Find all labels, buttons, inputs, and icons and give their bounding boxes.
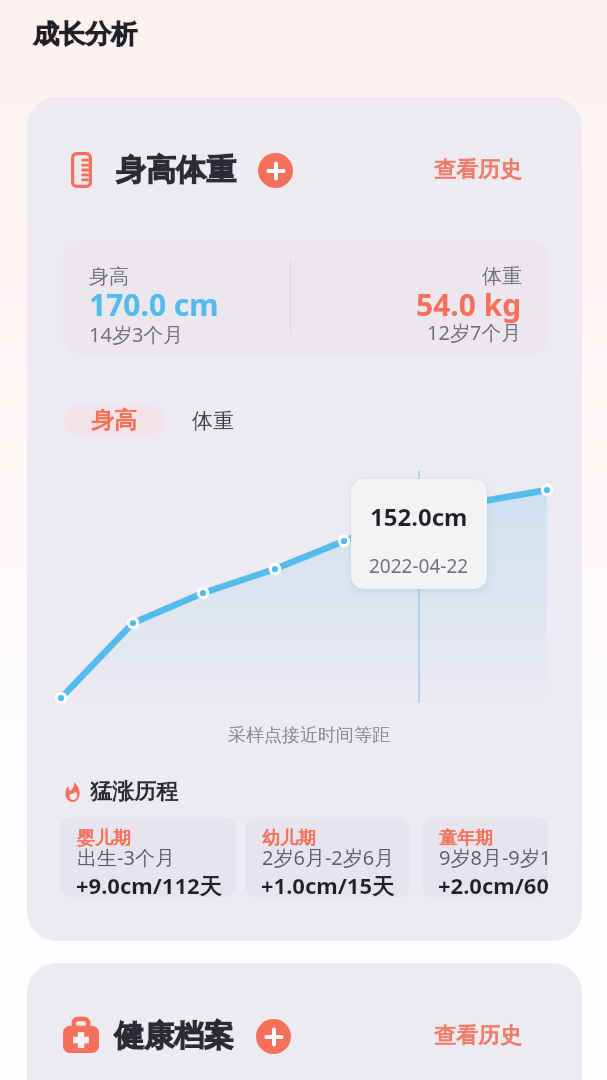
staticText: 婴儿期 [77,827,131,850]
staticText: 2022-04-22 [369,553,469,579]
staticText: 身高体重 [116,151,236,189]
button[interactable]: 童年期 [422,817,548,897]
staticText: 体重 [192,408,234,434]
staticText: 9岁8月-9岁10月 [439,844,548,871]
button[interactable]: 查看历史 [430,1016,526,1056]
button[interactable]: 幼儿期 [245,817,410,897]
button[interactable]: 身高 [64,406,164,435]
staticText: 采样点接近时间等距 [228,724,390,747]
button[interactable]: 添加健康档案 [256,1019,291,1054]
staticText: 54.0 kg [416,284,522,325]
staticText: 猛涨历程 [90,778,178,806]
button[interactable]: 婴儿期 [60,817,236,897]
staticText: 查看历史 [434,156,522,184]
staticText: 170.0 cm [89,284,219,325]
staticText: 12岁7个月 [427,319,522,346]
staticText: 查看历史 [434,1022,522,1050]
button[interactable]: 查看历史 [430,150,526,190]
staticText: 童年期 [439,827,493,850]
staticText: 身高 [91,406,137,435]
staticText: 成长分析 [33,18,137,51]
staticText: +2.0cm/60天 [438,870,548,897]
button[interactable]: 体重 [184,406,242,435]
staticText: 152.0cm [370,500,468,533]
staticText: +9.0cm/112天 [76,870,222,897]
staticText: +1.0cm/15天 [261,870,395,897]
staticText: 14岁3个月 [89,321,184,348]
button[interactable]: 添加身高体重 [258,153,293,188]
staticText: 体重 [482,264,522,289]
staticText: 出生-3个月 [77,844,175,871]
staticText: 身高 [89,264,129,289]
staticText: 2岁6月-2岁6月 [262,844,395,871]
staticText: 幼儿期 [262,827,316,850]
staticText: 健康档案 [114,1017,234,1055]
